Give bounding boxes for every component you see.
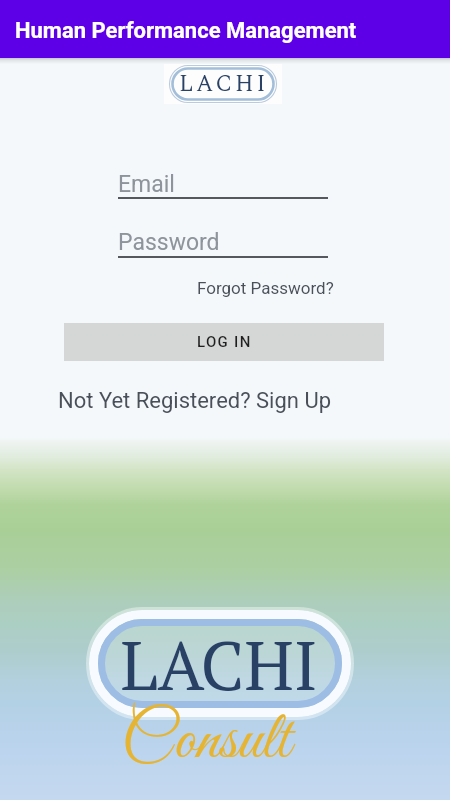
staticText: Human Performance Management xyxy=(15,18,357,44)
staticText: Password xyxy=(118,229,220,256)
staticText: Not Yet Registered? Sign Up xyxy=(58,388,332,414)
staticText: Email xyxy=(118,171,175,198)
button[interactable]: Forgot Password? xyxy=(197,278,334,298)
staticText: LACHI xyxy=(179,67,269,102)
staticText: Forgot Password? xyxy=(197,278,334,298)
staticText: Consult xyxy=(121,699,291,784)
button[interactable]: LOG IN xyxy=(64,323,384,361)
staticText: LOG IN xyxy=(197,333,252,351)
button[interactable]: Not Yet Registered? Sign Up xyxy=(58,388,332,414)
staticText: LACHI xyxy=(120,619,318,709)
